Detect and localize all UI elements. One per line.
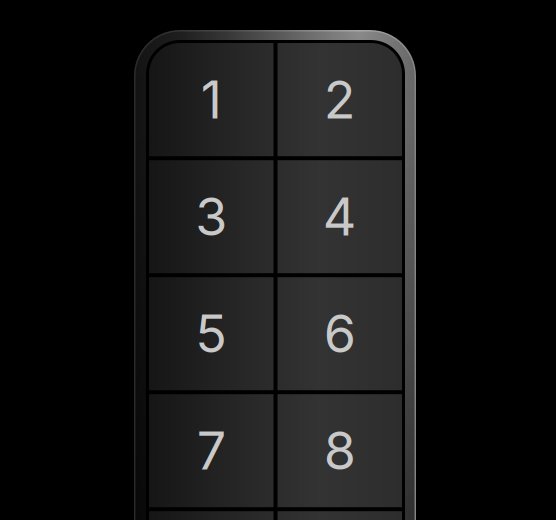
- staticText: 7: [197, 419, 226, 482]
- staticText: 1: [201, 68, 222, 131]
- staticText: 5: [195, 302, 227, 365]
- button[interactable]: 9: [149, 511, 273, 520]
- staticText: 2: [324, 68, 356, 131]
- button[interactable]: 0: [277, 511, 402, 520]
- staticText: 3: [195, 185, 227, 248]
- button[interactable]: 5: [149, 277, 273, 390]
- staticText: 4: [323, 185, 357, 248]
- button[interactable]: 2: [277, 43, 402, 156]
- staticText: 6: [324, 302, 356, 365]
- button[interactable]: 6: [277, 277, 402, 390]
- button[interactable]: 1: [149, 43, 273, 156]
- button[interactable]: 7: [149, 394, 273, 507]
- button[interactable]: 8: [277, 394, 402, 507]
- button[interactable]: 4: [277, 160, 402, 273]
- staticText: 8: [324, 419, 356, 482]
- button[interactable]: 3: [149, 160, 273, 273]
